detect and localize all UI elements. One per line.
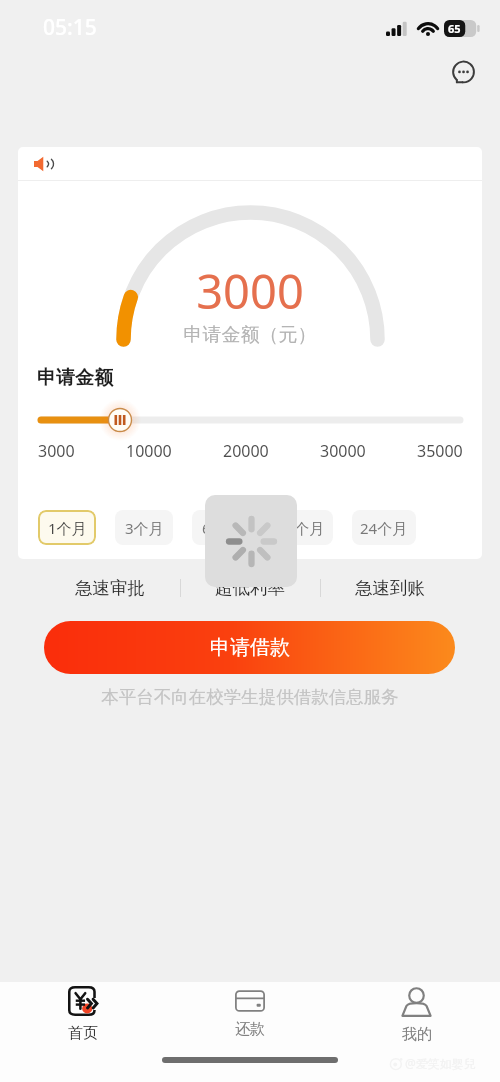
- button[interactable]: 1个月: [38, 510, 96, 545]
- staticText: 申请金额: [37, 366, 113, 390]
- button[interactable]: 12个月: [269, 510, 333, 545]
- button[interactable]: 我的: [333, 982, 500, 1046]
- staticText: 05:15: [43, 13, 97, 42]
- staticText: 3000: [18, 259, 482, 323]
- button[interactable]: 3个月: [115, 510, 173, 545]
- button[interactable]: 首页: [0, 982, 166, 1046]
- button[interactable]: 还款: [166, 982, 333, 1046]
- button[interactable]: 申请借款: [44, 621, 455, 674]
- staticText: 还款: [235, 1020, 265, 1039]
- staticText: 10000: [126, 440, 172, 462]
- staticText: 24个月: [360, 518, 408, 538]
- button[interactable]: 24个月: [352, 510, 416, 545]
- staticText: 首页: [68, 1024, 98, 1043]
- staticText: 申请借款: [210, 635, 290, 660]
- staticText: 3个月: [125, 518, 164, 538]
- staticText: 急速到账: [355, 577, 425, 599]
- button[interactable]: 超低利率: [180, 575, 320, 601]
- staticText: 我的: [402, 1025, 432, 1044]
- staticText: 12个月: [277, 518, 325, 538]
- staticText: 超低利率: [215, 577, 285, 599]
- staticText: 申请金额（元）: [18, 323, 482, 347]
- button[interactable]: Customer service: [446, 56, 480, 90]
- button[interactable]: 6个月: [192, 510, 250, 545]
- staticText: @爱笑如婴兒: [405, 1055, 476, 1071]
- button[interactable]: 急速审批: [40, 575, 180, 601]
- staticText: 1个月: [48, 518, 87, 538]
- staticText: 35000: [417, 440, 463, 462]
- staticText: 本平台不向在校学生提供借款信息服务: [0, 686, 500, 708]
- staticText: 65: [448, 21, 461, 36]
- staticText: 30000: [320, 440, 366, 462]
- staticText: 6个月: [202, 518, 241, 538]
- staticText: 急速审批: [75, 577, 145, 599]
- staticText: 20000: [223, 440, 269, 462]
- staticText: 3000: [38, 440, 75, 462]
- button[interactable]: 急速到账: [320, 575, 460, 601]
